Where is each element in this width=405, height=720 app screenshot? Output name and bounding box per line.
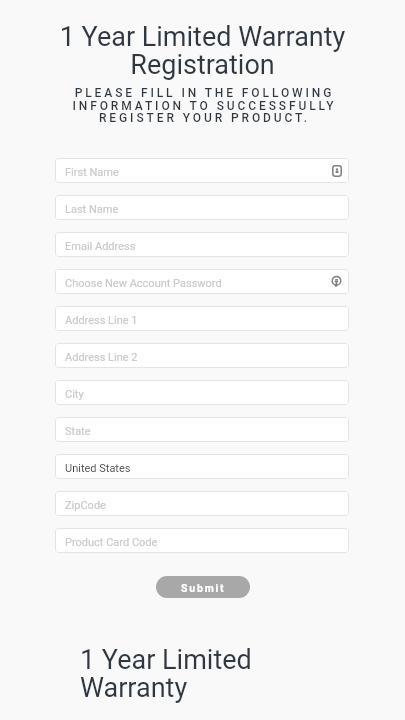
button[interactable]: United States xyxy=(55,454,349,479)
button[interactable]: City xyxy=(55,380,349,405)
button[interactable]: First Name xyxy=(55,158,349,183)
button[interactable]: Address Line 1 xyxy=(55,306,349,331)
staticText: Product Card Code xyxy=(65,536,158,549)
button[interactable]: Choose New Account Password xyxy=(55,269,349,294)
staticText: United States xyxy=(65,462,131,475)
staticText: 1 Year Limited Warranty Registration xyxy=(26,21,379,81)
other: Password manager xyxy=(331,276,342,287)
staticText: Address Line 2 xyxy=(65,351,138,364)
staticText: State xyxy=(65,425,91,438)
button[interactable]: State xyxy=(55,417,349,442)
staticText: Submit xyxy=(181,582,226,594)
other: Autofill xyxy=(332,165,342,177)
staticText: City xyxy=(65,388,84,401)
staticText: Address Line 1 xyxy=(65,314,138,327)
staticText: First Name xyxy=(65,166,119,179)
button[interactable]: Product Card Code xyxy=(55,528,349,553)
staticText: PLEASE FILL IN THE FOLLOWING INFORMATION… xyxy=(60,86,349,125)
button[interactable]: Email Address xyxy=(55,232,349,257)
button[interactable]: Submit xyxy=(156,576,250,598)
button[interactable]: Last Name xyxy=(55,195,349,220)
staticText: Email Address xyxy=(65,240,136,253)
button[interactable]: Address Line 2 xyxy=(55,343,349,368)
button[interactable]: ZipCode xyxy=(55,491,349,516)
staticText: Last Name xyxy=(65,203,119,216)
staticText: ZipCode xyxy=(65,499,106,512)
staticText: Choose New Account Password xyxy=(65,277,222,290)
staticText: 1 Year Limited Warranty xyxy=(80,644,252,704)
